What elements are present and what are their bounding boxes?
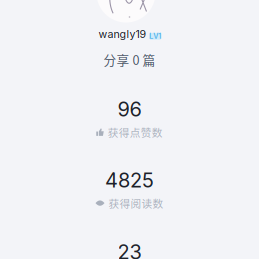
staticText: 23 <box>117 240 141 259</box>
staticText: 96 <box>117 97 141 121</box>
staticText: wangly19 <box>99 27 147 40</box>
staticText: 4825 <box>105 168 154 192</box>
staticText: 分享 0 篇 <box>103 50 155 69</box>
staticText: 获得点赞数 <box>108 124 163 140</box>
button[interactable]: wangly19 <box>99 27 161 40</box>
staticText: LV1 <box>149 32 161 41</box>
staticText: 获得阅读数 <box>108 195 163 211</box>
